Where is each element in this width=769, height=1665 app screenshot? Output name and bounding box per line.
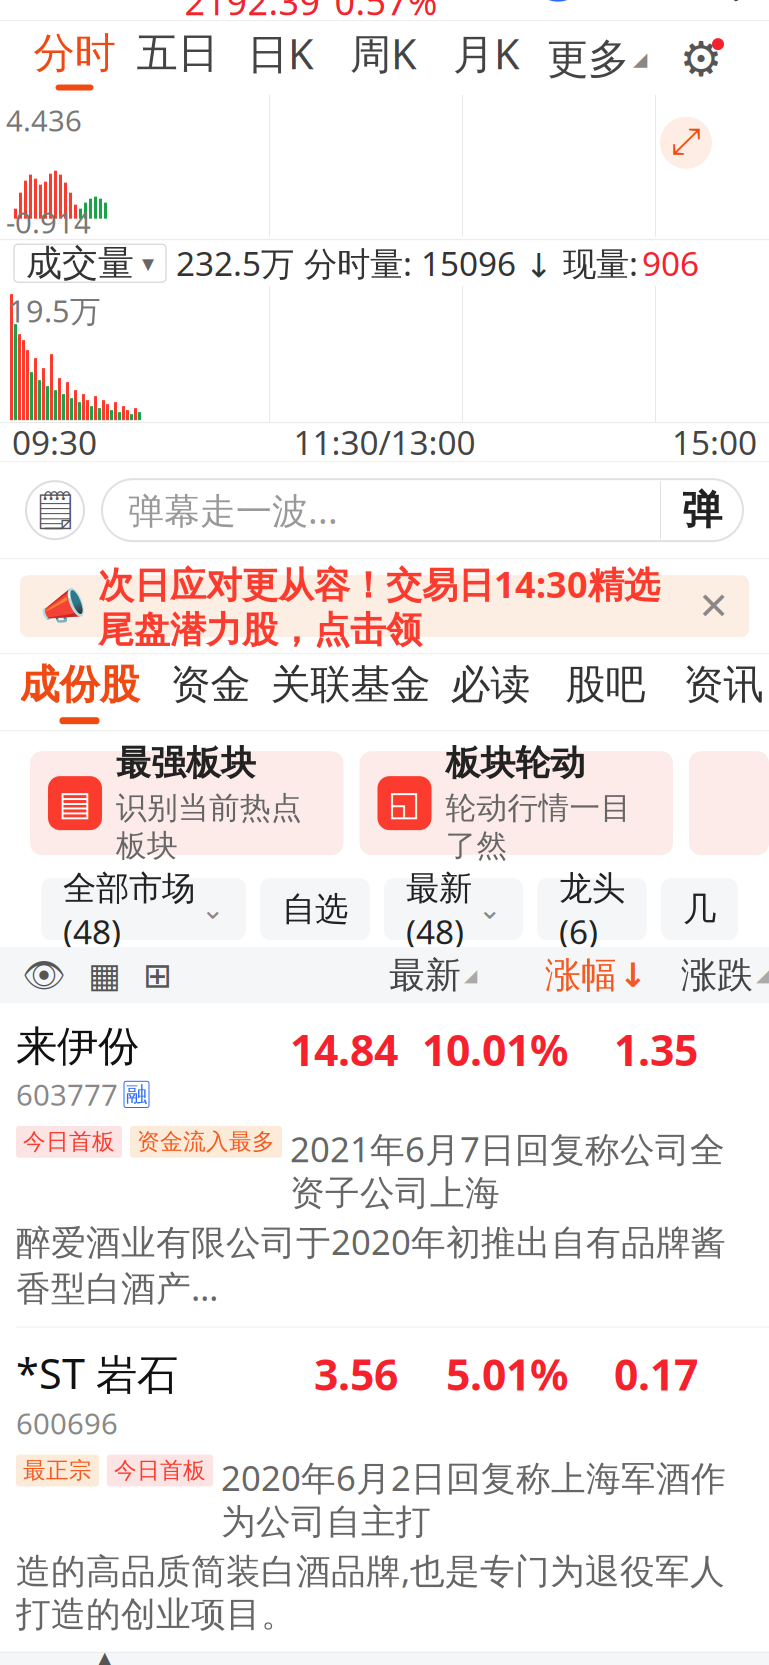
- staticText: 现量:: [563, 241, 638, 285]
- button[interactable]: 更多: [538, 23, 656, 95]
- staticText: 2021年6月7日回复称公司全资子公司上海: [290, 1126, 725, 1214]
- staticText: ⌄: [201, 893, 224, 925]
- button[interactable]: 设置: [656, 23, 746, 95]
- button[interactable]: 成份股: [4, 654, 154, 730]
- staticText: 🔍: [682, 0, 745, 3]
- staticText: 轮动行情一目了然: [445, 789, 631, 865]
- staticText: 3.56: [314, 1346, 398, 1402]
- button[interactable]: 全部市场 (48): [41, 878, 246, 940]
- staticText: 0.17: [614, 1346, 698, 1402]
- button[interactable]: 必读: [434, 654, 546, 730]
- staticText: 11:30/13:00: [293, 420, 475, 464]
- staticText: 最正宗: [23, 1457, 92, 1484]
- staticText: 👁: [22, 955, 66, 995]
- button[interactable]: 资金: [154, 654, 266, 730]
- button[interactable]: ▤: [30, 751, 343, 855]
- button[interactable]: 来伊份: [0, 1003, 769, 1326]
- staticText: ▤: [58, 783, 91, 823]
- button[interactable]: 日K: [229, 23, 332, 95]
- staticText: 分时量: 15096 ↓: [304, 241, 553, 285]
- staticText: *ST 岩石: [16, 1346, 178, 1401]
- staticText: 涨幅: [545, 953, 617, 997]
- staticText: 成份股: [19, 660, 139, 709]
- button[interactable]: 添加: [143, 955, 172, 995]
- button[interactable]: 显示: [22, 955, 66, 995]
- button[interactable]: 月K: [435, 23, 538, 95]
- staticText: ✕: [698, 585, 729, 627]
- button[interactable]: ◱: [359, 751, 673, 855]
- button[interactable]: *ST 岩石: [0, 1328, 769, 1652]
- staticText: ▾: [142, 249, 154, 277]
- staticText: 周K: [350, 26, 417, 81]
- staticText: ▲: [96, 1646, 113, 1665]
- button[interactable]: 涨跌: [647, 953, 769, 997]
- staticText: 分时: [33, 28, 115, 79]
- button[interactable]: 成交量: [14, 244, 166, 282]
- staticText: 必读: [450, 660, 530, 709]
- staticText: 14.84: [290, 1021, 398, 1078]
- staticText: 资金: [170, 660, 250, 709]
- button[interactable]: 涨幅: [477, 953, 647, 997]
- button[interactable]: 弹幕走一波...: [102, 479, 743, 541]
- staticText: 识别当前热点板块: [116, 789, 302, 865]
- button[interactable]: 布局: [88, 955, 121, 995]
- staticText: 最新 (48): [406, 865, 472, 953]
- button[interactable]: 📣: [20, 575, 749, 637]
- button[interactable]: 搜索: [682, 0, 745, 3]
- staticText: 融: [126, 1081, 147, 1107]
- staticText: 600696: [16, 1404, 118, 1443]
- staticText: 5.01%: [446, 1346, 568, 1402]
- staticText: 09:30: [12, 420, 97, 464]
- staticText: 1.35: [614, 1021, 698, 1078]
- staticText: 造的高品质简装白酒品牌,也是专门为退役军人打造的创业项目。: [16, 1547, 725, 1636]
- staticText: 今日首板: [23, 1128, 115, 1156]
- staticText: ⤢: [671, 124, 701, 161]
- staticText: 资讯: [683, 660, 763, 709]
- button[interactable]: 几: [661, 878, 738, 940]
- staticText: 资金流入最多: [137, 1128, 275, 1156]
- button[interactable]: 五日: [126, 23, 229, 95]
- staticText: ◢: [464, 965, 477, 985]
- button[interactable]: 龙头 (6): [537, 878, 647, 940]
- button[interactable]: 弹幕设置: [26, 481, 84, 539]
- button[interactable]: 关联基金: [266, 654, 434, 730]
- staticText: 来伊份: [16, 1021, 139, 1072]
- staticText: 19.5万: [8, 290, 101, 331]
- staticText: 日K: [247, 26, 314, 81]
- staticText: 自选: [282, 889, 348, 930]
- staticText: 0.57%: [334, 0, 437, 25]
- button[interactable]: 自选: [260, 878, 370, 940]
- staticText: 次日应对更从容！交易日14:30精选尾盘潜力股，点击领: [98, 560, 660, 652]
- staticText: 几: [683, 889, 716, 930]
- button[interactable]: ▲: [0, 1657, 209, 1665]
- button[interactable]: 最新 (48): [384, 878, 523, 940]
- button[interactable]: 分时: [23, 23, 126, 95]
- staticText: 成交量: [26, 241, 134, 285]
- staticText: 全部市场 (48): [63, 865, 195, 953]
- button[interactable]: 全屏: [660, 117, 712, 169]
- staticText: ⌄: [478, 893, 501, 925]
- staticText: 最强板块: [116, 742, 256, 784]
- staticText: 10.01%: [422, 1021, 568, 1078]
- button[interactable]: 周K: [332, 23, 435, 95]
- button[interactable]: 最新: [327, 953, 477, 997]
- staticText: ◢: [633, 49, 647, 70]
- staticText: 更多: [547, 34, 629, 85]
- button[interactable]: 股吧: [546, 654, 664, 730]
- staticText: 15:00: [672, 420, 757, 464]
- staticText: 弹幕走一波...: [128, 486, 338, 534]
- staticText: 月K: [453, 26, 520, 81]
- staticText: ◢: [756, 965, 769, 985]
- staticText: -0.914: [6, 203, 91, 242]
- staticText: 今日首板: [114, 1457, 206, 1484]
- button[interactable]: 资讯: [664, 654, 769, 730]
